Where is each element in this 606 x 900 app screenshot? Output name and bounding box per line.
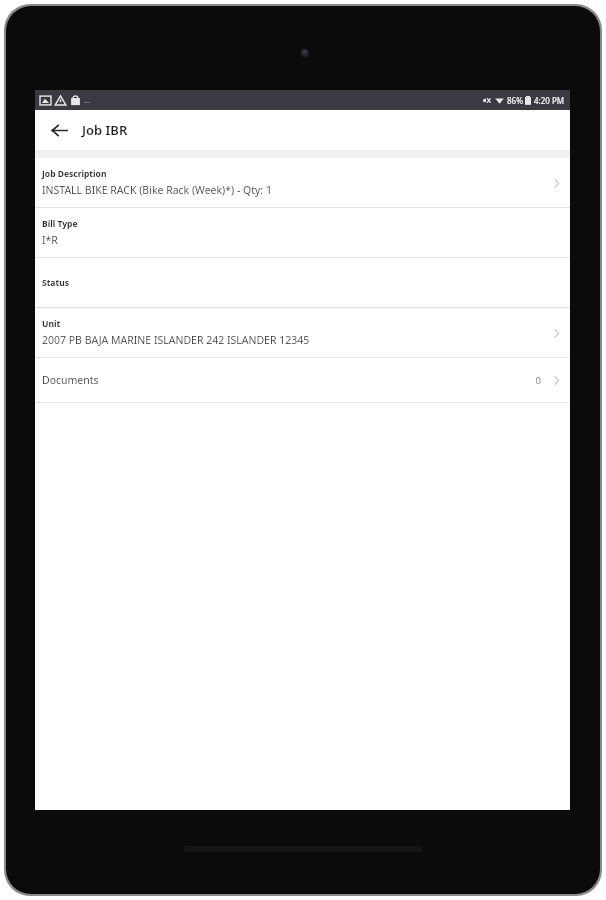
button[interactable]: Bill Type <box>35 208 570 257</box>
staticText: Status <box>42 277 69 289</box>
staticText: Bill Type <box>42 218 78 230</box>
button[interactable]: Job Description <box>35 158 570 207</box>
button[interactable]: Back <box>43 114 75 146</box>
staticText: 2007 PB BAJA MARINE ISLANDER 242 ISLANDE… <box>42 333 310 347</box>
staticText: Unit <box>42 318 61 330</box>
staticText: INSTALL BIKE RACK (Bike Rack (Week)*) - … <box>42 183 272 197</box>
staticText: 4:20 PM <box>534 95 565 106</box>
staticText: 86% <box>507 95 523 106</box>
button[interactable]: Documents <box>35 358 570 402</box>
button[interactable]: Unit <box>35 308 570 357</box>
staticText: 0 <box>535 374 541 387</box>
staticText: Job IBR <box>82 121 128 139</box>
staticText: Documents <box>42 373 535 387</box>
staticText: ... <box>84 96 90 106</box>
button[interactable]: Status <box>35 258 570 307</box>
staticText: Job Description <box>42 168 107 180</box>
staticText: I*R <box>42 233 58 247</box>
